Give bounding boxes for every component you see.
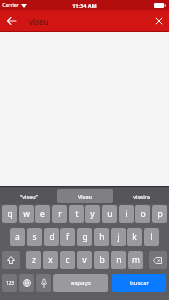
button[interactable]: n: [111, 251, 126, 269]
button[interactable]: 123: [2, 274, 17, 292]
button[interactable]: Viseu: [57, 189, 113, 203]
staticText: “viseu”: [20, 193, 38, 200]
button[interactable]: m: [128, 251, 143, 269]
staticText: p: [157, 208, 163, 220]
staticText: q: [7, 208, 13, 220]
button[interactable]: [149, 10, 169, 32]
button[interactable]: g: [77, 228, 92, 246]
button[interactable]: k: [127, 228, 142, 246]
button[interactable]: viseira: [113, 188, 169, 204]
button[interactable]: l: [144, 228, 159, 246]
button[interactable]: c: [60, 251, 75, 269]
staticText: m: [132, 254, 140, 266]
staticText: o: [140, 208, 146, 220]
staticText: v: [82, 254, 87, 266]
staticText: t: [75, 208, 79, 220]
button[interactable]: espaço: [53, 274, 108, 292]
staticText: d: [49, 231, 55, 243]
button[interactable]: w: [19, 205, 34, 223]
button[interactable]: j: [111, 228, 126, 246]
staticText: 123: [6, 280, 14, 286]
button[interactable]: s: [27, 228, 42, 246]
button[interactable]: “viseu”: [0, 188, 57, 204]
button[interactable]: [2, 251, 20, 269]
button[interactable]: [149, 251, 167, 269]
button[interactable]: [0, 10, 22, 32]
button[interactable]: y: [85, 205, 100, 223]
staticText: f: [66, 231, 69, 243]
button[interactable]: u: [102, 205, 117, 223]
staticText: x: [48, 254, 53, 266]
staticText: e: [40, 208, 45, 220]
staticText: c: [65, 254, 70, 266]
staticText: g: [82, 231, 88, 243]
button[interactable]: t: [69, 205, 84, 223]
staticText: y: [90, 208, 95, 220]
staticText: 11:34 AM: [72, 2, 97, 9]
button[interactable]: a: [10, 228, 25, 246]
staticText: j: [117, 231, 120, 243]
button[interactable]: z: [26, 251, 41, 269]
staticText: espaço: [71, 279, 91, 287]
button[interactable]: f: [60, 228, 75, 246]
staticText: buscar: [130, 279, 149, 287]
staticText: b: [99, 254, 105, 266]
staticText: w: [23, 208, 30, 220]
staticText: Viseu: [78, 193, 92, 200]
staticText: s: [32, 231, 37, 243]
button[interactable]: p: [152, 205, 167, 223]
staticText: n: [116, 254, 122, 266]
staticText: z: [32, 254, 36, 266]
button[interactable]: d: [44, 228, 59, 246]
button[interactable]: i: [119, 205, 134, 223]
button[interactable]: o: [135, 205, 150, 223]
button[interactable]: r: [52, 205, 67, 223]
button[interactable]: q: [2, 205, 17, 223]
button[interactable]: buscar: [112, 274, 166, 292]
staticText: viseira: [133, 193, 150, 200]
staticText: r: [58, 208, 62, 220]
staticText: i: [125, 208, 128, 220]
button[interactable]: h: [94, 228, 109, 246]
staticText: u: [107, 208, 113, 220]
button[interactable]: e: [35, 205, 50, 223]
button[interactable]: x: [43, 251, 58, 269]
staticText: viseu: [29, 16, 49, 27]
staticText: Carrier: [2, 2, 19, 9]
button[interactable]: b: [94, 251, 109, 269]
staticText: k: [132, 231, 137, 243]
button[interactable]: [19, 274, 34, 292]
staticText: h: [99, 231, 105, 243]
button[interactable]: [36, 274, 51, 292]
staticText: l: [150, 231, 153, 243]
button[interactable]: v: [77, 251, 92, 269]
staticText: a: [15, 231, 20, 243]
